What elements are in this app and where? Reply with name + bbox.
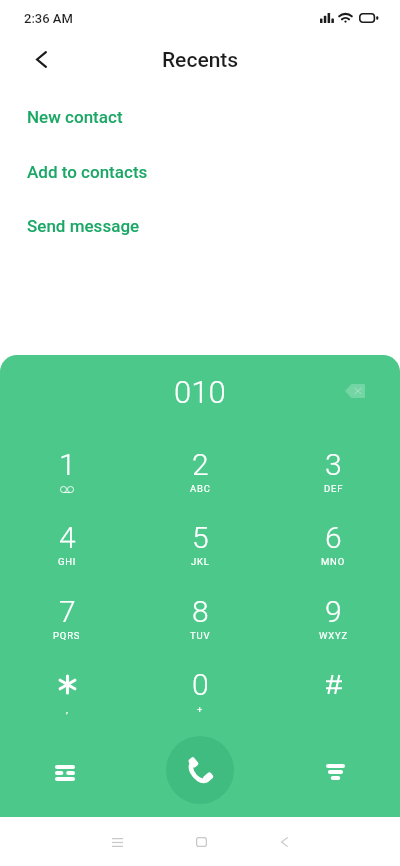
button[interactable]: Call xyxy=(166,736,234,804)
staticText: 3 xyxy=(325,447,342,482)
button[interactable]: Dialpad options xyxy=(43,751,87,795)
staticText: 7 xyxy=(59,594,76,629)
staticText: 2:36 AM xyxy=(24,11,73,26)
staticText: + xyxy=(197,704,204,715)
staticText: New contact xyxy=(27,107,123,127)
button[interactable]: 0 xyxy=(134,674,267,747)
staticText: , xyxy=(66,704,69,715)
button[interactable]: Back xyxy=(262,820,306,864)
button[interactable]: Backspace xyxy=(332,368,378,414)
staticText: JKL xyxy=(191,556,210,567)
staticText: TUV xyxy=(190,630,211,641)
staticText: Recents xyxy=(162,48,239,73)
button[interactable]: 1 xyxy=(0,454,134,527)
button[interactable]: , xyxy=(0,674,134,747)
staticText: 010 xyxy=(174,374,226,410)
button[interactable]: Add to contacts xyxy=(0,153,400,191)
button[interactable]: 9 xyxy=(267,601,400,674)
staticText: MNO xyxy=(321,556,346,567)
button[interactable]: Filter xyxy=(313,750,357,794)
button[interactable] xyxy=(267,674,400,747)
staticText: GHI xyxy=(58,556,77,567)
staticText: 6 xyxy=(325,520,342,555)
button[interactable]: New contact xyxy=(0,98,400,136)
button[interactable]: 4 xyxy=(0,527,134,600)
button[interactable]: 8 xyxy=(134,601,267,674)
button[interactable]: 3 xyxy=(267,454,400,527)
staticText: 1 xyxy=(59,447,76,482)
staticText: 9 xyxy=(325,594,342,629)
button[interactable]: Recent apps xyxy=(95,820,139,864)
staticText: Add to contacts xyxy=(27,162,148,182)
button[interactable]: 7 xyxy=(0,601,134,674)
button[interactable]: 5 xyxy=(134,527,267,600)
button[interactable]: Home xyxy=(179,820,223,864)
button[interactable]: Send message xyxy=(0,207,400,245)
staticText: PQRS xyxy=(53,630,81,641)
staticText: 0 xyxy=(192,667,209,702)
staticText: ABC xyxy=(190,483,211,494)
button[interactable]: 2 xyxy=(134,454,267,527)
staticText: 5 xyxy=(192,520,209,555)
button[interactable]: 6 xyxy=(267,527,400,600)
button[interactable]: Back xyxy=(19,42,63,77)
staticText: 4 xyxy=(59,520,76,555)
staticText: 8 xyxy=(192,594,209,629)
staticText: WXYZ xyxy=(319,630,348,641)
staticText: DEF xyxy=(324,483,344,494)
staticText: 2 xyxy=(192,447,209,482)
staticText: Send message xyxy=(27,216,140,236)
